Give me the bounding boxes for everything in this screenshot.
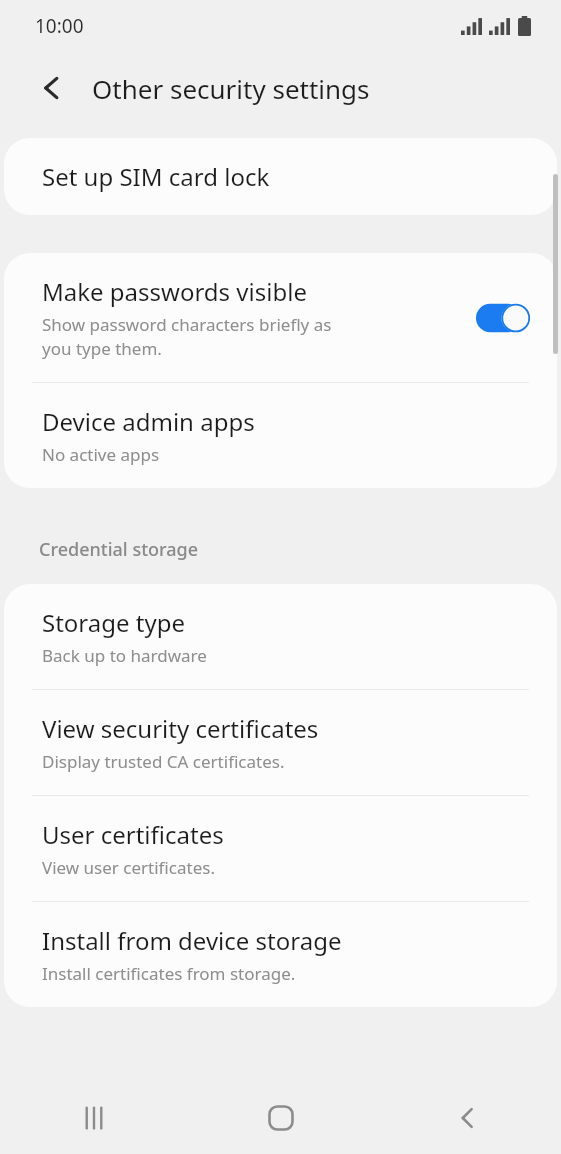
staticText: Set up SIM card lock <box>42 160 270 193</box>
staticText: View security certificates <box>42 712 319 745</box>
staticText: 10:00 <box>35 13 84 39</box>
button[interactable]: User certificates <box>4 796 557 901</box>
staticText: Install from device storage <box>42 924 342 957</box>
staticText: Show password characters briefly as you … <box>42 313 332 360</box>
button[interactable]: Make passwords visible toggle <box>473 300 533 336</box>
button[interactable]: Back <box>374 1082 561 1154</box>
staticText: Credential storage <box>39 537 199 562</box>
staticText: Make passwords visible <box>42 275 307 308</box>
staticText: No active apps <box>42 443 160 466</box>
staticText: View user certificates. <box>42 856 215 879</box>
button[interactable]: View security certificates <box>4 690 557 795</box>
button[interactable]: Home <box>187 1082 374 1154</box>
staticText: Other security settings <box>92 71 370 106</box>
button[interactable]: Storage type <box>4 584 557 689</box>
button[interactable]: Recent apps <box>0 1082 187 1154</box>
staticText: Back up to hardware <box>42 644 207 667</box>
button[interactable]: Install from device storage <box>4 902 557 1007</box>
staticText: Install certificates from storage. <box>42 962 296 985</box>
staticText: Display trusted CA certificates. <box>42 750 285 773</box>
button[interactable]: Make passwords visible <box>4 253 557 382</box>
staticText: Device admin apps <box>42 405 255 438</box>
button[interactable]: Device admin apps <box>4 383 557 488</box>
staticText: User certificates <box>42 818 224 851</box>
button[interactable]: Back <box>22 58 82 118</box>
button[interactable]: Set up SIM card lock <box>4 138 557 215</box>
staticText: Storage type <box>42 606 185 639</box>
